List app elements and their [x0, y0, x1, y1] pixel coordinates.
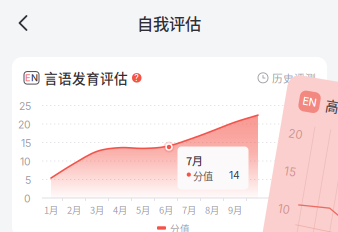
- staticText: 5月: [136, 203, 150, 216]
- staticText: 25: [19, 100, 31, 113]
- staticText: 15: [21, 137, 31, 150]
- staticText: N: [31, 72, 38, 83]
- staticText: 4月: [113, 203, 127, 216]
- staticText: 8月: [205, 203, 219, 216]
- staticText: 自我评估: [137, 11, 201, 35]
- staticText: 7月: [182, 203, 196, 216]
- staticText: 6月: [159, 203, 173, 216]
- staticText: 历史评测: [272, 70, 316, 85]
- button[interactable]: Back: [6, 6, 40, 40]
- staticText: ?: [134, 73, 139, 83]
- staticText: 20: [281, 134, 295, 148]
- staticText: 9月: [228, 203, 242, 216]
- staticText: 20: [18, 118, 31, 131]
- staticText: 14: [229, 169, 240, 182]
- staticText: 2月: [67, 203, 81, 216]
- staticText: 5: [25, 174, 31, 187]
- staticText: 10: [20, 155, 31, 168]
- button[interactable]: 历史评测: [258, 70, 316, 85]
- staticText: 分值: [193, 168, 213, 183]
- staticText: 言语发育评估: [44, 68, 128, 88]
- staticText: 15: [283, 172, 295, 186]
- staticText: 高: [313, 97, 326, 116]
- staticText: 1月: [44, 203, 58, 216]
- staticText: EN: [289, 100, 303, 113]
- staticText: 7月: [186, 152, 203, 168]
- staticText: 10: [283, 210, 295, 224]
- staticText: 0: [24, 192, 31, 205]
- staticText: 分值: [170, 221, 190, 232]
- staticText: E: [25, 72, 31, 83]
- staticText: 3月: [90, 203, 104, 216]
